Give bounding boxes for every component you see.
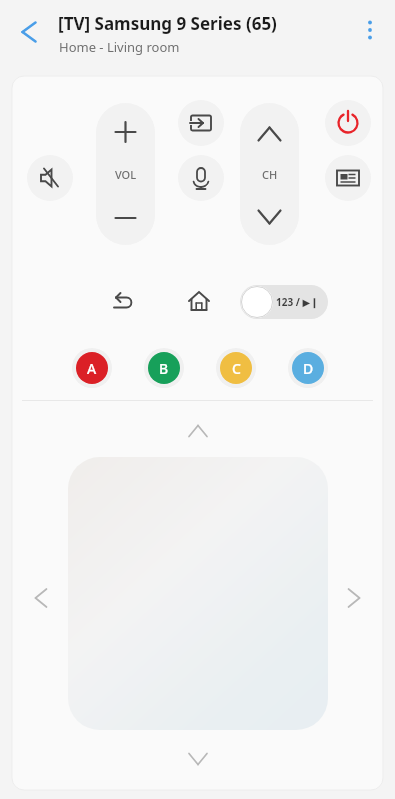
button[interactable]: Volume up — [96, 103, 155, 151]
staticText: 123 / ▶❙ — [276, 295, 319, 309]
button[interactable]: Mute — [27, 155, 73, 201]
button[interactable]: Touchpad — [68, 457, 328, 730]
staticText: C — [232, 359, 241, 378]
button[interactable]: Colour button B — [144, 348, 184, 388]
button[interactable]: Power — [325, 100, 371, 146]
staticText: VOL — [96, 167, 155, 183]
button[interactable]: Down — [176, 742, 220, 776]
staticText: B — [159, 359, 169, 378]
button[interactable]: Guide — [325, 155, 371, 201]
button[interactable]: More options — [352, 12, 388, 48]
button[interactable]: Numeric and playback toggle — [240, 285, 328, 319]
button[interactable]: Colour button A — [72, 348, 112, 388]
button[interactable]: Home — [178, 281, 220, 323]
button[interactable]: Back — [8, 12, 48, 52]
button[interactable]: Left — [23, 576, 59, 620]
button[interactable]: Voice — [178, 155, 224, 201]
button[interactable]: Source — [178, 100, 224, 146]
button[interactable]: Colour button D — [288, 348, 328, 388]
button[interactable]: Right — [336, 576, 372, 620]
button[interactable]: Up — [176, 414, 220, 448]
button[interactable]: Channel up — [240, 103, 299, 151]
staticText: [TV] Samsung 9 Series (65) — [58, 12, 277, 35]
staticText: CH — [240, 167, 299, 183]
staticText: Home - Living room — [59, 38, 180, 56]
button[interactable]: Volume down — [96, 197, 155, 245]
button[interactable]: Back — [102, 281, 144, 323]
button[interactable]: Colour button C — [216, 348, 256, 388]
staticText: D — [303, 359, 314, 378]
button[interactable]: Channel down — [240, 197, 299, 245]
staticText: A — [87, 359, 97, 378]
